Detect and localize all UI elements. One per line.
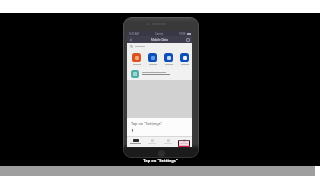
button[interactable]: App [180,53,189,65]
button[interactable]: Tab [160,136,176,147]
button[interactable]: Tab [176,136,192,147]
button[interactable]: App [132,53,141,65]
staticText: Carrier [155,32,164,36]
staticText: Tap on "Settings" [131,121,163,126]
staticText: 100% [179,32,186,36]
button[interactable]: App [148,53,157,65]
button[interactable]: Back [129,38,133,42]
button[interactable]: Selected tab [127,136,144,147]
staticText: Tap on "Settings" [143,158,178,163]
button[interactable]: Tab [144,136,160,147]
staticText: 9:41 AM [129,32,139,36]
button[interactable]: More options [186,38,190,42]
staticText: Mobile Data [151,38,169,42]
button[interactable]: App [164,53,173,65]
button[interactable]: Search [130,45,145,48]
button[interactable] [131,67,192,80]
other: Microphone [131,129,134,132]
